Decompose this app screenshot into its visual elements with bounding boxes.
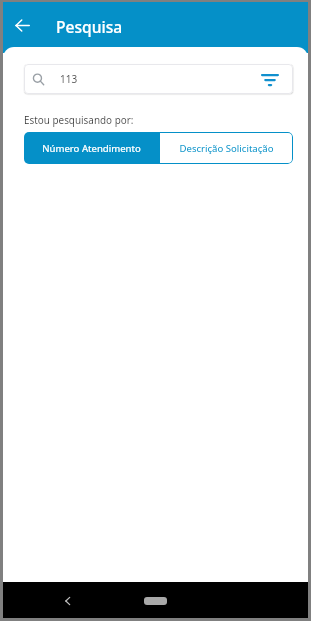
staticText: 113 — [60, 72, 78, 86]
button[interactable]: Descrição Solicitação — [159, 132, 293, 164]
staticText: Estou pesquisando por: — [24, 113, 134, 126]
button[interactable]: Filter — [258, 67, 282, 91]
staticText: Pesquisa — [56, 16, 123, 37]
button[interactable]: Número Atendimento — [24, 132, 159, 164]
staticText: Número Atendimento — [42, 142, 141, 155]
staticText: Descrição Solicitação — [179, 142, 274, 155]
button[interactable]: 113 — [24, 64, 293, 94]
button[interactable]: Home — [144, 597, 167, 605]
button[interactable]: System back — [57, 590, 79, 612]
button[interactable]: Back — [8, 11, 36, 39]
